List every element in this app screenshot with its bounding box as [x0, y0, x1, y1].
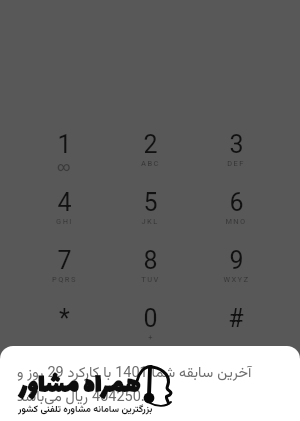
staticText: + [148, 333, 154, 342]
staticText: بزرگترین سامانه مشاوره تلفنی کشور [18, 402, 153, 417]
button[interactable]: 6 [193, 188, 279, 246]
staticText: ∞ [57, 159, 72, 174]
staticText: آخرین سابقه شما 1401 با کارکرد 29 روز و … [17, 362, 257, 409]
staticText: PQRS [52, 275, 77, 284]
button[interactable]: 2 [107, 130, 193, 188]
staticText: DEF [227, 159, 245, 168]
staticText: WXYZ [223, 275, 250, 284]
staticText: 8 [143, 246, 158, 275]
staticText: 0 [143, 304, 158, 333]
button[interactable]: 1 [21, 130, 107, 188]
staticText: 9 [229, 246, 244, 275]
button[interactable]: 3 [193, 130, 279, 188]
button[interactable]: # [193, 304, 279, 362]
staticText: 7 [57, 246, 72, 275]
button[interactable]: آخرین سابقه شما 1401 با کارکرد 29 روز و … [0, 346, 300, 421]
button[interactable]: 5 [107, 188, 193, 246]
button[interactable]: 7 [21, 246, 107, 304]
staticText: TUV [141, 275, 160, 284]
staticText: # [228, 304, 244, 333]
button[interactable]: 8 [107, 246, 193, 304]
button[interactable]: * [21, 304, 107, 362]
staticText: 6 [229, 188, 244, 217]
staticText: GHI [56, 217, 73, 226]
staticText: 4 [57, 188, 72, 217]
button[interactable]: 4 [21, 188, 107, 246]
other: Hamrah Moshaver logo [132, 362, 176, 410]
staticText: 5 [143, 188, 158, 217]
button[interactable]: 9 [193, 246, 279, 304]
staticText: * [59, 304, 70, 333]
staticText: MNO [225, 217, 247, 226]
staticText: همراه مشاور [19, 365, 141, 409]
staticText: 1 [57, 130, 72, 159]
staticText: 2 [143, 130, 158, 159]
button[interactable]: 0 [107, 304, 193, 362]
staticText: 3 [229, 130, 244, 159]
staticText: JKL [141, 217, 159, 226]
staticText: ABC [141, 159, 160, 168]
